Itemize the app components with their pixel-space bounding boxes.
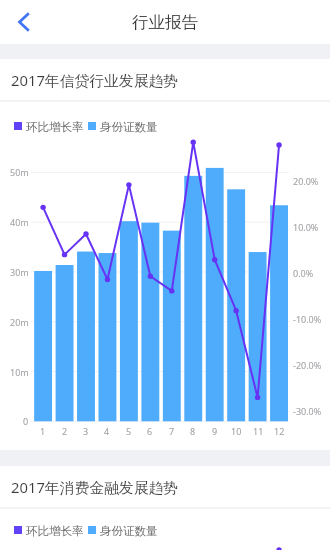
- button[interactable]: 2017年消费金融发展趋势: [0, 466, 330, 507]
- staticText: 2017年消费金融发展趋势: [11, 477, 179, 497]
- staticText: -10.0%: [293, 313, 322, 325]
- staticText: 2017年信贷行业发展趋势: [11, 70, 179, 90]
- staticText: -30.0%: [293, 405, 322, 417]
- button[interactable]: 环比增长率: [14, 119, 84, 133]
- staticText: 身份证数量: [100, 524, 158, 538]
- staticText: 12: [274, 425, 285, 437]
- staticText: 6: [147, 425, 153, 437]
- button[interactable]: Back: [0, 0, 46, 44]
- staticText: 3: [83, 425, 89, 437]
- staticText: 5: [126, 425, 132, 437]
- staticText: 10.0%: [293, 221, 319, 233]
- staticText: 8: [190, 425, 196, 437]
- staticText: 20m: [10, 316, 29, 328]
- staticText: 10: [231, 425, 242, 437]
- staticText: 7: [169, 425, 175, 437]
- staticText: 50m: [10, 166, 29, 178]
- staticText: -20.0%: [293, 359, 322, 371]
- staticText: 行业报告: [132, 12, 198, 33]
- staticText: 40m: [10, 216, 29, 228]
- staticText: 2: [62, 425, 68, 437]
- staticText: 30m: [10, 266, 29, 278]
- button[interactable]: 2017年信贷行业发展趋势: [0, 59, 330, 100]
- staticText: 1: [40, 425, 46, 437]
- staticText: 环比增长率: [26, 524, 84, 538]
- button[interactable]: 环比增长率: [14, 523, 84, 537]
- staticText: 身份证数量: [100, 120, 158, 134]
- staticText: 4: [104, 425, 110, 437]
- staticText: 20.0%: [293, 175, 319, 187]
- staticText: 环比增长率: [26, 120, 84, 134]
- button[interactable]: 身份证数量: [88, 523, 158, 537]
- button[interactable]: 身份证数量: [88, 119, 158, 133]
- staticText: 9: [212, 425, 218, 437]
- staticText: 11: [253, 425, 264, 437]
- staticText: 10m: [10, 366, 29, 378]
- staticText: 0: [23, 415, 29, 427]
- staticText: 0.0%: [293, 267, 314, 279]
